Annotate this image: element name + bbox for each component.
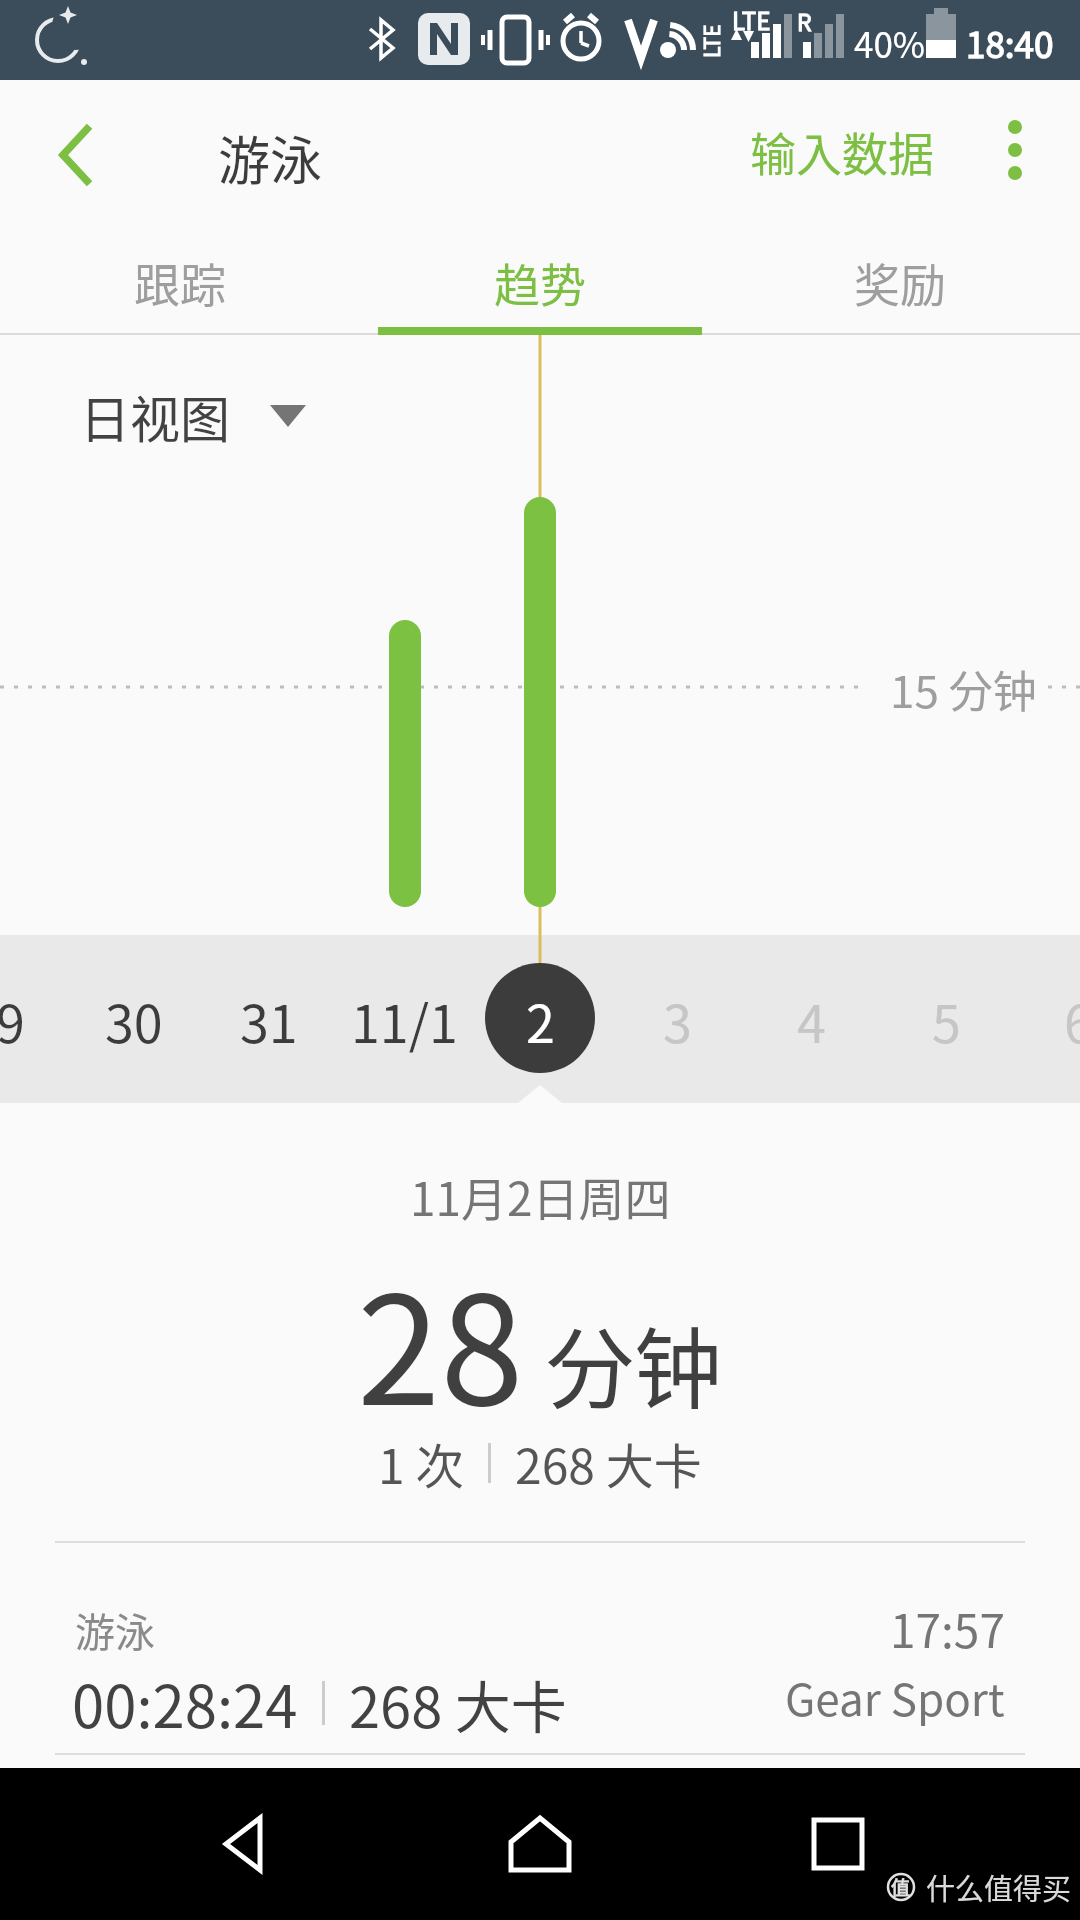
staticText: 11月2日周四 [410,1163,671,1230]
staticText: 15 分钟 [890,657,1037,721]
staticText: 游泳 [218,120,323,195]
button[interactable] [30,110,120,200]
staticText: 268 大卡 [515,1428,702,1498]
staticText: 输入数据 [750,118,934,185]
staticText: 28 [357,1231,524,1448]
staticText: 日视图 [80,380,230,452]
button[interactable]: 3 [610,983,744,1053]
staticText: 30 [105,983,163,1053]
button[interactable]: 11/1 [337,983,471,1053]
staticText: 9 [0,983,25,1053]
button[interactable] [180,1788,306,1900]
staticText: 游泳 [75,1601,155,1659]
button[interactable] [775,1788,901,1900]
button[interactable]: 4 [744,983,878,1053]
staticText: 什么值得买 [926,1866,1072,1908]
staticText: 17:57 [890,1595,1005,1662]
staticText: 值 [891,1873,911,1901]
button[interactable]: 奖励 [720,230,1080,335]
staticText: 18:40 [966,17,1054,68]
button[interactable]: 5 [879,983,1013,1053]
staticText: 11/1 [351,983,458,1053]
button[interactable]: 输入数据 [750,118,934,185]
staticText: 5 [932,983,961,1053]
staticText: 268 大卡 [349,1663,567,1744]
staticText: 00:28:24 [72,1661,298,1745]
button[interactable]: 日视图 [80,380,306,452]
staticText: Gear Sport [785,1665,1005,1729]
button[interactable]: 9 [0,983,77,1053]
button[interactable]: 31 [202,983,336,1053]
button[interactable] [980,115,1050,185]
staticText: R [797,4,812,37]
staticText: 奖励 [854,249,946,316]
staticText: 40% [854,17,926,68]
button[interactable]: 游泳 [0,1543,1080,1755]
staticText: 4 [797,983,826,1053]
button[interactable]: 2 [473,983,607,1053]
button[interactable]: 30 [67,983,201,1053]
staticText: 31 [240,983,298,1053]
staticText: 1 次 [378,1428,464,1498]
staticText: 6 [1064,983,1080,1053]
staticText: LTE [696,24,726,58]
staticText: 跟踪 [134,249,226,316]
staticText: 3 [663,983,692,1053]
button[interactable] [477,1788,603,1900]
button[interactable]: 6 [1011,983,1080,1053]
staticText: 2 [526,983,555,1053]
button[interactable]: 跟踪 [0,230,360,335]
staticText: 分钟 [546,1299,723,1426]
staticText: LTE [732,2,771,37]
staticText: 趋势 [494,249,586,316]
button[interactable]: 趋势 [360,230,720,335]
